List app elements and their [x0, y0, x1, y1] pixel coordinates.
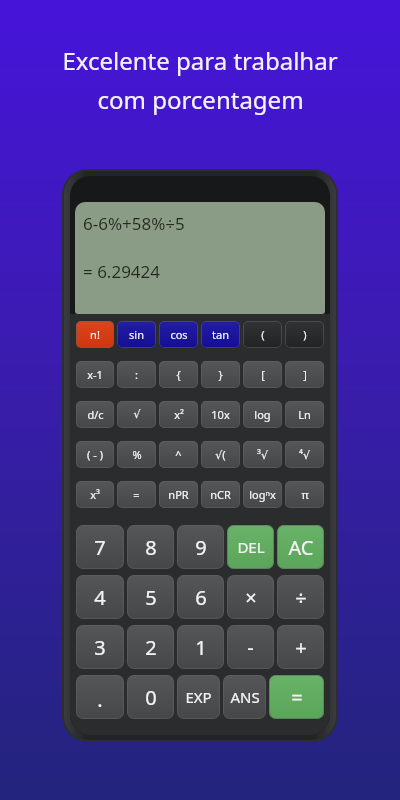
button[interactable]: 5: [127, 575, 174, 619]
button[interactable]: ×: [227, 575, 274, 619]
staticText: log: [254, 407, 271, 422]
staticText: ): [303, 327, 307, 342]
staticText: ³√: [257, 447, 268, 462]
button[interactable]: nPR: [159, 481, 198, 508]
staticText: = 6.29424: [83, 260, 161, 283]
button[interactable]: 6: [177, 575, 224, 619]
staticText: ÷: [295, 584, 307, 611]
button[interactable]: 1: [177, 625, 224, 669]
staticText: 7: [94, 534, 106, 561]
staticText: EXP: [185, 687, 212, 707]
button[interactable]: x³: [76, 481, 114, 508]
button[interactable]: DEL: [227, 525, 274, 569]
button[interactable]: nCR: [201, 481, 240, 508]
button[interactable]: (: [243, 321, 282, 348]
staticText: 2: [145, 634, 157, 661]
staticText: ^: [175, 447, 182, 462]
staticText: [: [261, 367, 265, 382]
button[interactable]: 7: [76, 525, 124, 569]
staticText: 5: [145, 584, 157, 611]
button[interactable]: d/c: [76, 401, 114, 428]
button[interactable]: logⁿx: [243, 481, 282, 508]
staticText: √(: [215, 447, 226, 462]
staticText: =: [291, 684, 303, 711]
button[interactable]: :: [117, 361, 156, 388]
button[interactable]: cos: [159, 321, 198, 348]
button[interactable]: =: [269, 675, 324, 719]
staticText: }: [218, 367, 223, 382]
staticText: 10x: [211, 407, 230, 422]
staticText: √: [133, 408, 141, 421]
button[interactable]: ^: [159, 441, 198, 468]
staticText: {: [176, 367, 181, 382]
staticText: -: [247, 634, 254, 661]
staticText: logⁿx: [249, 487, 276, 502]
button[interactable]: x-1: [76, 361, 114, 388]
button[interactable]: +: [277, 625, 324, 669]
staticText: AC: [288, 534, 314, 561]
staticText: sin: [129, 327, 144, 342]
staticText: 9: [195, 534, 207, 561]
staticText: com porcentagem: [97, 83, 304, 116]
staticText: 1: [195, 634, 207, 661]
button[interactable]: ÷: [277, 575, 324, 619]
button[interactable]: √: [117, 401, 156, 428]
button[interactable]: 8: [127, 525, 174, 569]
staticText: ×: [245, 584, 257, 611]
button[interactable]: √(: [201, 441, 240, 468]
button[interactable]: 9: [177, 525, 224, 569]
button[interactable]: ³√: [243, 441, 282, 468]
staticText: x²: [174, 407, 184, 422]
button[interactable]: Ln: [285, 401, 324, 428]
button[interactable]: 2: [127, 625, 174, 669]
staticText: 8: [145, 534, 157, 561]
button[interactable]: log: [243, 401, 282, 428]
button[interactable]: ⁴√: [285, 441, 324, 468]
staticText: cos: [170, 327, 188, 342]
button[interactable]: .: [76, 675, 124, 719]
button[interactable]: tan: [201, 321, 240, 348]
button[interactable]: }: [201, 361, 240, 388]
button[interactable]: ]: [285, 361, 324, 388]
staticText: Excelente para trabalhar: [62, 44, 338, 77]
button[interactable]: n!: [76, 321, 114, 348]
button[interactable]: 0: [127, 675, 174, 719]
staticText: 4: [94, 584, 106, 611]
staticText: ⁴√: [299, 447, 310, 462]
button[interactable]: π: [285, 481, 324, 508]
button[interactable]: 3: [76, 625, 124, 669]
staticText: +: [295, 634, 307, 661]
staticText: ]: [303, 367, 307, 382]
staticText: 3: [94, 634, 106, 661]
button[interactable]: ): [285, 321, 324, 348]
staticText: :: [135, 367, 138, 382]
button[interactable]: [: [243, 361, 282, 388]
staticText: x-1: [87, 367, 103, 382]
button[interactable]: ( - ): [76, 441, 114, 468]
staticText: (: [261, 327, 265, 342]
staticText: nCR: [210, 487, 231, 502]
staticText: nPR: [168, 487, 189, 502]
button[interactable]: 10x: [201, 401, 240, 428]
staticText: ( - ): [87, 447, 103, 462]
staticText: 6-6%+58%÷5: [83, 212, 185, 235]
button[interactable]: -: [227, 625, 274, 669]
staticText: ANS: [230, 687, 260, 707]
button[interactable]: {: [159, 361, 198, 388]
staticText: 6: [195, 584, 207, 611]
button[interactable]: %: [117, 441, 156, 468]
button[interactable]: x²: [159, 401, 198, 428]
button[interactable]: EXP: [177, 675, 220, 719]
staticText: tan: [212, 327, 229, 342]
staticText: d/c: [87, 407, 104, 422]
button[interactable]: =: [117, 481, 156, 508]
staticText: %: [132, 447, 142, 462]
staticText: Ln: [298, 407, 311, 422]
staticText: 0: [145, 684, 157, 711]
button[interactable]: AC: [277, 525, 324, 569]
button[interactable]: 4: [76, 575, 124, 619]
staticText: DEL: [237, 537, 265, 557]
staticText: .: [97, 686, 103, 713]
button[interactable]: ANS: [223, 675, 266, 719]
button[interactable]: sin: [117, 321, 156, 348]
